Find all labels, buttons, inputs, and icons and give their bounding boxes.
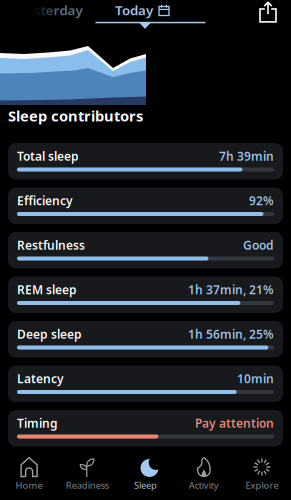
button[interactable]: Latency: [8, 365, 283, 402]
staticText: 1h 37min, 21%: [188, 281, 274, 297]
staticText: Readiness: [66, 479, 109, 491]
staticText: Sleep contributors: [8, 106, 143, 125]
staticText: Efficiency: [17, 192, 73, 208]
staticText: REM sleep: [17, 281, 77, 297]
button[interactable]: Efficiency: [8, 187, 283, 224]
button[interactable]: Activity: [175, 457, 233, 491]
staticText: Home: [16, 479, 43, 491]
staticText: Sleep: [134, 479, 157, 491]
staticText: 10min: [237, 370, 274, 386]
button[interactable]: Deep sleep: [8, 321, 283, 357]
button[interactable]: Yesterday: [2, 0, 82, 20]
staticText: 1h 56min, 25%: [188, 326, 274, 342]
button[interactable]: Share: [258, 1, 278, 24]
staticText: 92%: [249, 192, 274, 208]
staticText: Deep sleep: [17, 326, 82, 342]
staticText: Yesterday: [18, 1, 82, 19]
staticText: Timing: [17, 415, 58, 431]
button[interactable]: Home: [0, 457, 58, 491]
staticText: Explore: [245, 479, 278, 491]
staticText: Latency: [17, 370, 64, 386]
button[interactable]: Sleep: [116, 457, 174, 491]
staticText: Good: [243, 237, 274, 253]
staticText: Activity: [189, 479, 219, 491]
button[interactable]: Explore: [233, 457, 291, 491]
staticText: 7h 39min: [219, 148, 274, 164]
staticText: Today: [115, 1, 153, 19]
button[interactable]: Readiness: [58, 457, 116, 491]
button[interactable]: Restfulness: [8, 232, 283, 268]
button[interactable]: Timing: [8, 410, 283, 446]
staticText: Total sleep: [17, 148, 79, 164]
button[interactable]: REM sleep: [8, 276, 283, 313]
button[interactable]: Total sleep: [8, 143, 283, 179]
staticText: Pay attention: [195, 415, 274, 431]
button[interactable]: Today: [82, 0, 202, 20]
staticText: Restfulness: [17, 237, 85, 253]
